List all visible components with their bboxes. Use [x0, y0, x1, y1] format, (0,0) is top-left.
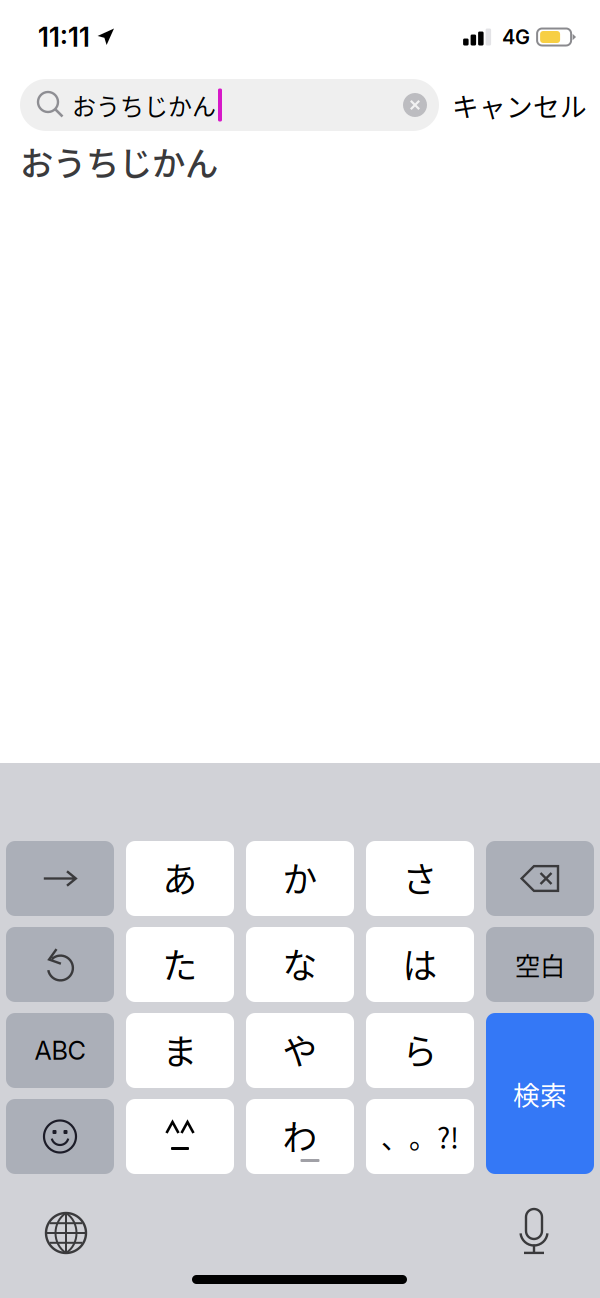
button[interactable]: キャンセル: [447, 79, 592, 131]
button[interactable]: [126, 1099, 234, 1174]
button[interactable]: Delete: [486, 841, 594, 916]
button[interactable]: さ: [366, 841, 474, 916]
button[interactable]: Dictation: [498, 1200, 570, 1262]
staticText: あ: [162, 852, 197, 903]
staticText: おうちじかん: [20, 137, 218, 185]
staticText: や: [282, 1024, 317, 1075]
button[interactable]: ABC: [6, 1013, 114, 1088]
staticText: キャンセル: [452, 86, 587, 124]
staticText: は: [402, 938, 437, 989]
staticText: さ: [402, 852, 437, 903]
staticText: 4G: [502, 25, 530, 49]
staticText: な: [282, 938, 317, 989]
button[interactable]: 検索: [486, 1013, 594, 1174]
button[interactable]: ま: [126, 1013, 234, 1088]
staticText: わ: [282, 1110, 317, 1161]
button[interactable]: 空白: [486, 927, 594, 1002]
button[interactable]: か: [246, 841, 354, 916]
button[interactable]: Undo: [6, 927, 114, 1002]
button[interactable]: Emoji: [6, 1099, 114, 1174]
staticText: か: [282, 852, 317, 903]
staticText: ま: [162, 1024, 197, 1075]
staticText: ABC: [34, 1035, 85, 1066]
button[interactable]: おうちじかん: [20, 79, 439, 131]
staticText: 11:11: [38, 21, 90, 53]
button[interactable]: ら: [366, 1013, 474, 1088]
button[interactable]: あ: [126, 841, 234, 916]
button[interactable]: 、。?!: [366, 1099, 474, 1174]
staticText: 空白: [515, 946, 565, 983]
staticText: ら: [402, 1024, 437, 1075]
staticText: 検索: [513, 1074, 567, 1113]
staticText: た: [162, 938, 197, 989]
button[interactable]: な: [246, 927, 354, 1002]
button[interactable]: た: [126, 927, 234, 1002]
button[interactable]: わ: [246, 1099, 354, 1174]
button[interactable]: や: [246, 1013, 354, 1088]
staticText: 、。?!: [381, 1116, 459, 1157]
button[interactable]: は: [366, 927, 474, 1002]
staticText: おうちじかん: [72, 88, 216, 122]
button[interactable]: Switch keyboard: [30, 1202, 102, 1264]
button[interactable]: Next candidate: [6, 841, 114, 916]
